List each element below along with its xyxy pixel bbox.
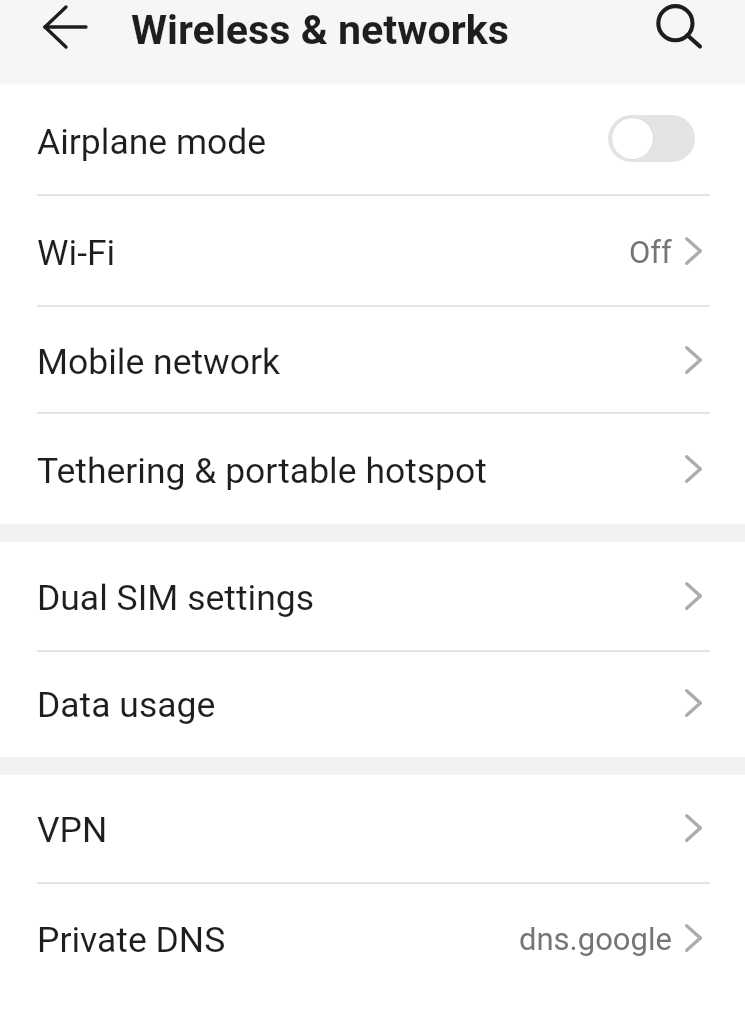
button[interactable]: VPN: [0, 775, 745, 885]
button[interactable]: Airplane mode off: [608, 115, 695, 162]
button[interactable]: Dual SIM settings: [0, 543, 745, 653]
button[interactable]: Tethering & portable hotspot: [0, 415, 745, 526]
staticText: Dual SIM settings: [37, 577, 315, 619]
button[interactable]: Airplane mode: [0, 86, 745, 198]
staticText: Wireless & networks: [131, 6, 510, 54]
button[interactable]: Search settings: [639, 0, 713, 83]
staticText: Data usage: [37, 684, 216, 726]
staticText: Tethering & portable hotspot: [37, 450, 487, 492]
button[interactable]: Wi-Fi: [0, 197, 745, 308]
staticText: Off: [629, 234, 672, 270]
button[interactable]: Private DNS: [0, 885, 745, 995]
staticText: Airplane mode: [37, 121, 267, 163]
staticText: dns.google: [519, 921, 672, 957]
staticText: VPN: [37, 809, 108, 851]
staticText: Wi-Fi: [37, 232, 116, 274]
button[interactable]: Data usage: [0, 652, 745, 758]
button[interactable]: Navigate back: [8, 0, 82, 83]
button[interactable]: Mobile network: [0, 308, 745, 415]
staticText: Private DNS: [37, 919, 226, 961]
staticText: Mobile network: [37, 341, 281, 383]
